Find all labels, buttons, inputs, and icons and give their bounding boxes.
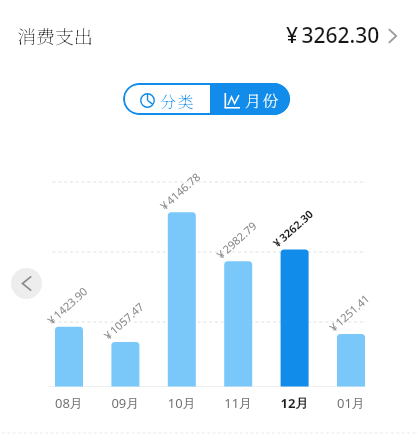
button[interactable]: 消费支出 (17, 22, 94, 49)
button[interactable] (210, 83, 290, 115)
button[interactable]: Back (11, 268, 42, 299)
staticText: ¥ 3262.30 (286, 21, 380, 50)
staticText: 分类 (160, 90, 196, 113)
staticText: 月份 (245, 89, 281, 112)
button[interactable] (123, 83, 210, 115)
button[interactable]: ¥ 3262.30 (286, 21, 397, 50)
staticText: 消费支出 (17, 22, 94, 49)
